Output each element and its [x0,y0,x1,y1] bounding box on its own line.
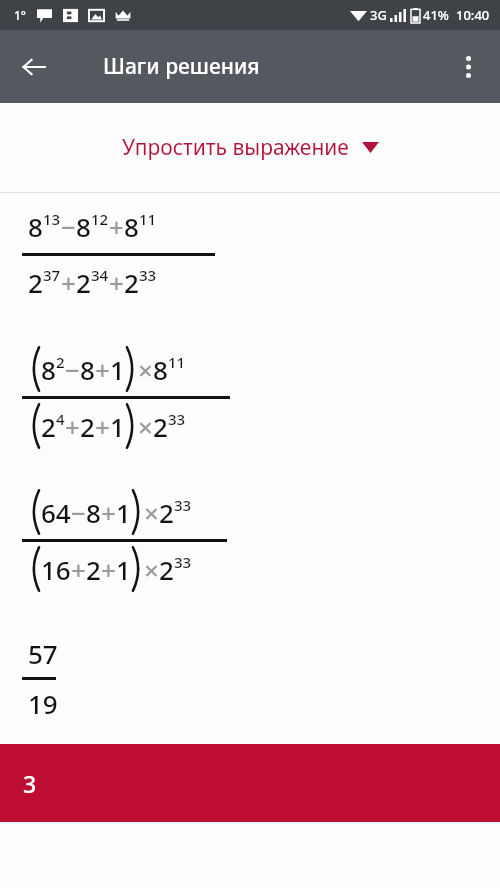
staticText: − [65,352,80,387]
staticText: 2 [86,552,101,587]
staticText: 8 [28,209,43,244]
staticText: Шаги решения [103,52,260,81]
staticText: 33 [174,495,192,515]
staticText: Упростить выражение [122,133,349,162]
staticText: 3G [370,6,387,24]
staticText: 2 [76,265,91,300]
staticText: 57 [28,636,58,671]
staticText: 8 [80,352,95,387]
staticText: 4 [56,409,65,429]
staticText: 2 [56,352,65,372]
staticText: × [144,552,159,587]
staticText: × [144,495,159,530]
staticText: 2 [28,265,43,300]
staticText: × [138,409,153,444]
staticText: − [71,495,86,530]
staticText: × [138,352,153,387]
staticText: + [109,265,124,300]
staticText: 33 [174,552,192,572]
staticText: 11 [168,352,186,372]
staticText: 8 [41,352,56,387]
staticText: 8 [124,209,139,244]
staticText: 13 [43,209,61,229]
staticText: 2 [159,552,174,587]
staticText: 1 [110,352,125,387]
staticText: + [95,409,110,444]
staticText: 2 [153,409,168,444]
staticText: 19 [28,686,58,721]
staticText: 1° [14,7,26,23]
staticText: + [101,495,116,530]
button[interactable]: Упростить выражение [0,103,500,192]
staticText: 16 [41,552,71,587]
staticText: 34 [91,265,109,285]
staticText: + [61,265,76,300]
staticText: 3 [23,768,37,799]
staticText: 2 [124,265,139,300]
staticText: + [109,209,124,244]
staticText: 8 [76,209,91,244]
staticText: 8 [153,352,168,387]
staticText: 41% [423,6,449,24]
staticText: 11 [139,209,157,229]
staticText: 12 [91,209,109,229]
staticText: + [95,352,110,387]
staticText: 33 [139,265,157,285]
staticText: + [71,552,86,587]
button[interactable]: 3 [0,744,500,822]
staticText: 2 [80,409,95,444]
button[interactable]: Back [10,43,58,91]
staticText: 37 [43,265,61,285]
staticText: 8 [86,495,101,530]
staticText: + [101,552,116,587]
staticText: − [61,209,76,244]
staticText: + [65,409,80,444]
staticText: 64 [41,495,71,530]
staticText: 10:40 [456,6,490,24]
staticText: 1 [116,495,131,530]
staticText: 2 [41,409,56,444]
staticText: 1 [116,552,131,587]
staticText: 33 [168,409,186,429]
staticText: 1 [110,409,125,444]
staticText: 2 [159,495,174,530]
button[interactable]: More options [444,43,492,91]
